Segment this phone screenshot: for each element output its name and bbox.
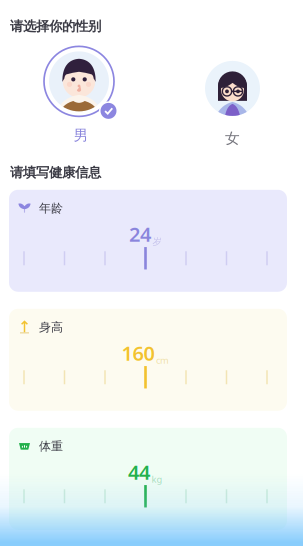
staticText: 160 [121,340,154,366]
button[interactable]: 体重 [9,428,287,530]
staticText: 身高 [39,320,63,334]
staticText: 岁 [152,236,161,247]
staticText: 请填写健康信息 [10,164,101,181]
staticText: cm [156,354,169,366]
staticText: 体重 [39,439,63,453]
staticText: 女 [225,129,240,147]
staticText: 男 [73,126,88,144]
button[interactable]: 男 [0,46,162,144]
button[interactable]: 身高 [9,309,287,411]
staticText: 年龄 [39,201,63,215]
staticText: 24 [129,221,151,247]
staticText: kg [151,473,162,485]
button[interactable]: 女 [162,48,303,142]
button[interactable]: 年龄 [9,190,287,292]
staticText: 请选择你的性别 [10,18,101,34]
staticText: 44 [128,459,150,485]
